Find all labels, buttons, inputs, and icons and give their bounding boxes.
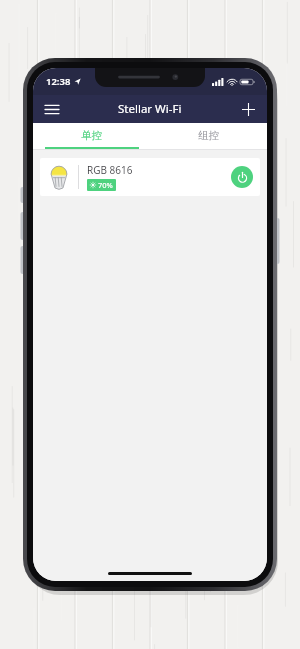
staticText: 单控	[81, 129, 102, 142]
staticText: RGB 8616	[87, 163, 133, 177]
staticText: 12:38	[46, 75, 71, 88]
staticText: 组控	[198, 129, 219, 142]
button[interactable]: Menu	[40, 97, 64, 121]
button[interactable]: Power toggle	[231, 166, 253, 188]
button[interactable]: 单控	[33, 123, 150, 147]
button[interactable]: Add device	[236, 97, 260, 121]
button[interactable]: 组控	[150, 123, 267, 147]
staticText: Stellar Wi-Fi	[118, 101, 182, 117]
staticText: 70%	[98, 180, 113, 190]
button[interactable]: RGB 8616	[40, 158, 260, 196]
